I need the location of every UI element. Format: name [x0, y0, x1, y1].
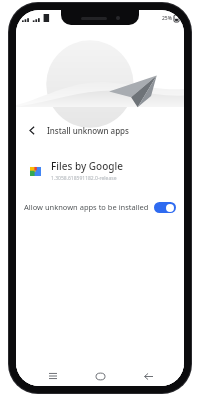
button[interactable]: Files by Google — [16, 159, 184, 182]
staticText: Install unknown apps — [47, 125, 129, 136]
button[interactable]: Back — [22, 120, 42, 140]
staticText: 25% — [162, 15, 172, 22]
other: Allow unknown apps toggle — [154, 202, 176, 213]
button[interactable]: Home — [89, 366, 111, 386]
button[interactable]: Back — [137, 366, 159, 386]
button[interactable]: Allow unknown apps to be installed — [16, 196, 184, 218]
staticText: Allow unknown apps to be installed — [24, 202, 150, 212]
staticText: Files by Google — [51, 159, 123, 173]
staticText: 1.3058.618591182.0-release — [51, 175, 117, 182]
button[interactable]: Recent apps — [42, 366, 64, 386]
